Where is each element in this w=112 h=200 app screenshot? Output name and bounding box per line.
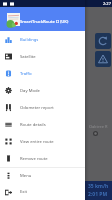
button[interactable]: Buildings [0, 31, 85, 48]
button[interactable]: Menu [0, 167, 85, 184]
button[interactable]: Satellite [0, 48, 85, 65]
staticText: Day Mode [20, 88, 40, 94]
staticText: Remove route [20, 156, 48, 162]
button[interactable]: Odometer report [0, 99, 85, 116]
staticText: 35 km/h [88, 183, 109, 190]
staticText: Odometer report [20, 105, 54, 111]
staticText: View entire route [20, 139, 54, 145]
button[interactable]: Day Mode [0, 82, 85, 99]
staticText: Exit [20, 189, 28, 195]
button[interactable]: Exit [0, 184, 85, 200]
staticText: SmartTruckRoute II (UK) [20, 19, 69, 25]
staticText: Oaktree R [89, 124, 108, 129]
staticText: Traffic [20, 71, 33, 77]
button[interactable]: View entire route [0, 133, 85, 150]
staticText: Satellite [20, 54, 36, 60]
staticText: Menu [20, 173, 32, 179]
button[interactable]: Traffic [0, 65, 85, 82]
button[interactable]: Route details [0, 116, 85, 133]
staticText: Route details [20, 122, 46, 128]
button[interactable]: Warnings [95, 51, 111, 67]
button[interactable]: Recalculate route [95, 33, 111, 49]
button[interactable]: Remove route [0, 150, 85, 167]
staticText: 2:01 PM [88, 191, 108, 198]
staticText: 2:27 [103, 1, 111, 6]
staticText: Buildings [20, 37, 39, 43]
